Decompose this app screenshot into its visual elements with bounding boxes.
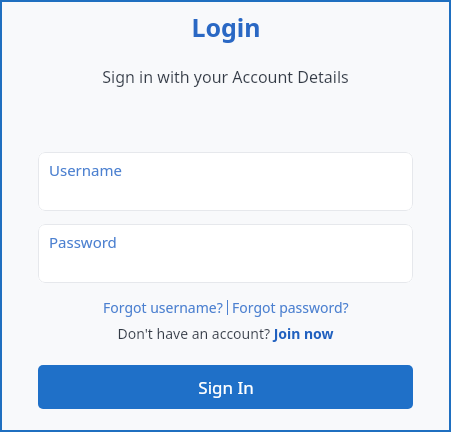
staticText: Username (49, 160, 122, 180)
staticText: Forgot password? (232, 298, 349, 317)
button[interactable]: Password (38, 224, 413, 283)
staticText: Forgot username? (103, 298, 223, 317)
button[interactable]: Username (38, 152, 413, 211)
button[interactable]: Don't have an account? Join now (113, 323, 338, 344)
staticText: Login (191, 10, 261, 44)
button[interactable]: Forgot password? (228, 297, 353, 318)
button[interactable]: Forgot username? (99, 297, 227, 318)
staticText: Password (49, 232, 117, 252)
staticText: Sign in with your Account Details (102, 66, 349, 88)
staticText: Sign In (198, 376, 254, 399)
button[interactable]: Sign In (38, 365, 413, 409)
staticText: Don't have an account? Join now (117, 324, 334, 343)
